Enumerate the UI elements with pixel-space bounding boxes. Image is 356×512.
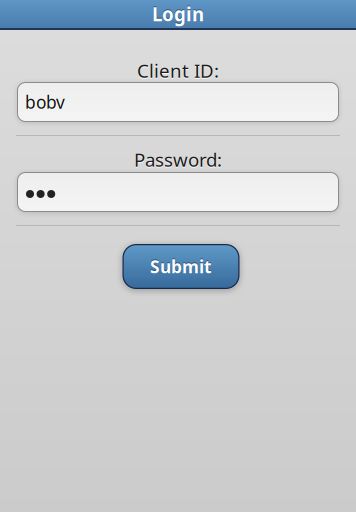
button[interactable]: Submit	[119, 244, 236, 289]
staticText: Login	[152, 2, 204, 26]
staticText: Submit	[150, 254, 212, 277]
staticText: Submit	[150, 255, 212, 278]
staticText: Client ID:	[137, 58, 219, 83]
staticText: Password:	[134, 147, 222, 172]
staticText: Password:	[134, 148, 222, 173]
staticText: Login	[152, 1, 204, 25]
staticText: Client ID:	[137, 59, 219, 84]
staticText: bobv	[25, 90, 65, 113]
